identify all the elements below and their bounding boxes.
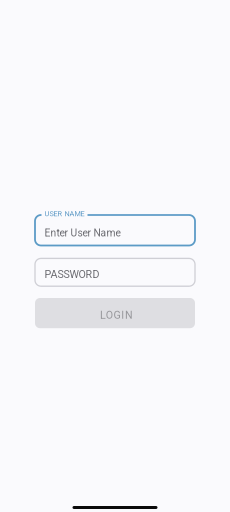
staticText: LOGIN: [100, 309, 133, 321]
button[interactable]: LOGIN: [35, 298, 195, 328]
staticText: USER NAME: [44, 209, 84, 218]
staticText: PASSWORD: [44, 268, 99, 280]
staticText: Enter User Name: [44, 227, 120, 239]
